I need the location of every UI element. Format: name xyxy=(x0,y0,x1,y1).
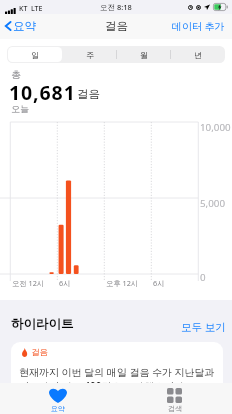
staticText: 주 xyxy=(86,50,94,60)
button[interactable]: 일 xyxy=(8,47,62,62)
button[interactable]: 데이터 추가 xyxy=(172,19,225,33)
button[interactable]: 년 xyxy=(171,47,224,62)
staticText: 현재까지 이번 달의 매일 걸음 수가 지난달과 비교하여 평균 400걸음 증… xyxy=(19,365,223,393)
staticText: 5,000 xyxy=(200,197,226,210)
button[interactable]: 주 xyxy=(63,47,116,62)
button[interactable]: 월 xyxy=(117,47,170,62)
staticText: 걸음 xyxy=(105,19,128,33)
staticText: 월 xyxy=(140,50,148,60)
staticText: 년 xyxy=(194,50,202,60)
staticText: 요약 xyxy=(13,19,36,33)
staticText: 10,681 xyxy=(9,79,76,106)
button[interactable]: 걸음 xyxy=(11,342,223,402)
staticText: 오전 8:18 xyxy=(100,2,132,12)
staticText: KT xyxy=(19,4,28,14)
button[interactable]: 모두 보기 xyxy=(181,320,226,334)
staticText: LTE xyxy=(31,4,43,14)
staticText: 0 xyxy=(200,271,206,284)
staticText: 오전 12시 xyxy=(12,278,45,288)
staticText: 걸음 xyxy=(77,87,100,101)
staticText: 오늘 xyxy=(11,103,29,114)
staticText: 오후 12시 xyxy=(106,278,139,288)
staticText: 검색 xyxy=(168,404,182,413)
staticText: 걸음 xyxy=(31,347,48,358)
staticText: 6시 xyxy=(59,278,71,288)
button[interactable]: 검색 xyxy=(116,383,232,414)
staticText: 하이라이트 xyxy=(11,316,74,332)
staticText: 총 xyxy=(11,68,21,81)
staticText: 요약 xyxy=(51,404,65,413)
button[interactable]: 요약 xyxy=(4,18,36,33)
staticText: 일 xyxy=(31,50,39,60)
button[interactable]: 요약 xyxy=(0,383,116,414)
staticText: 10,000 xyxy=(200,121,231,134)
staticText: 6시 xyxy=(153,278,165,288)
